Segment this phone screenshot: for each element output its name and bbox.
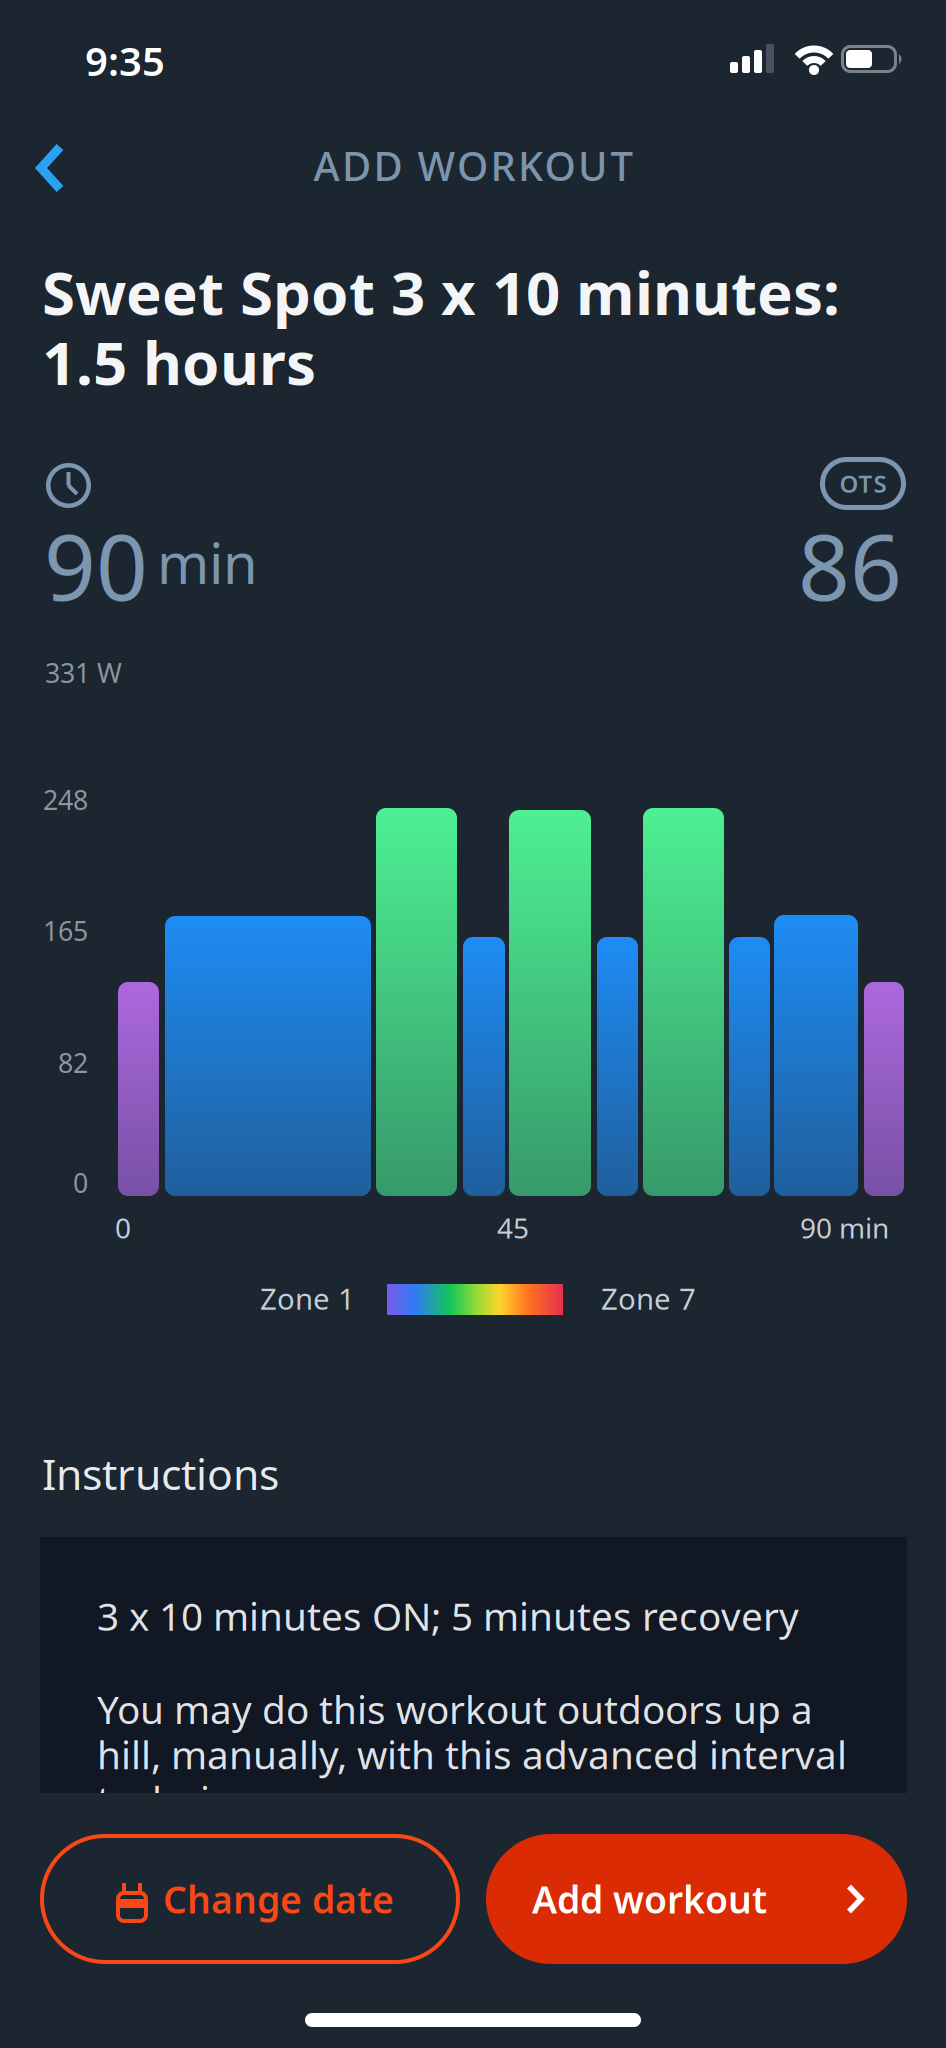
staticText: 1.5 hours — [42, 322, 316, 402]
staticText: 165 — [43, 913, 88, 948]
staticText: 86 — [798, 505, 902, 625]
staticText: Sweet Spot 3 x 10 minutes: — [42, 252, 840, 332]
staticText: 0 — [115, 1209, 131, 1246]
staticText: OTS — [839, 468, 886, 499]
staticText: Add workout — [532, 1874, 767, 1924]
staticText: 0 — [73, 1165, 88, 1200]
staticText: 45 — [497, 1209, 529, 1246]
staticText: min — [157, 525, 258, 599]
staticText: 82 — [58, 1045, 88, 1080]
button[interactable] — [30, 141, 90, 195]
staticText: 248 — [43, 782, 88, 817]
staticText: 9:35 — [85, 34, 165, 87]
button[interactable]: Change date — [40, 1834, 460, 1964]
staticText: Change date — [163, 1874, 394, 1924]
staticText: Zone 1 — [260, 1279, 355, 1318]
staticText: 331 W — [45, 655, 122, 690]
staticText: 90 min — [800, 1209, 889, 1246]
staticText: Instructions — [42, 1445, 279, 1502]
staticText: ADD WORKOUT — [313, 139, 632, 192]
staticText: 3 x 10 minutes ON; 5 minutes recovery — [97, 1590, 799, 1641]
staticText: Zone 7 — [601, 1279, 696, 1318]
staticText: 90 — [44, 505, 148, 625]
staticText: You may do this workout outdoors up a hi… — [97, 1683, 847, 1825]
button[interactable]: Add workout — [486, 1834, 907, 1964]
